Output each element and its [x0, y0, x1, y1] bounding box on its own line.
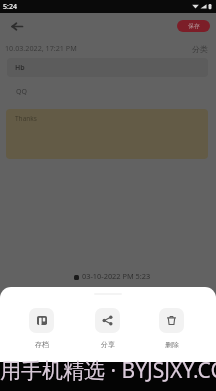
staticText: 03-10-2022 PM 5:23: [82, 271, 151, 281]
staticText: 存档: [35, 340, 49, 349]
button[interactable]: 分类: [189, 41, 211, 57]
staticText: 保存: [188, 22, 200, 30]
staticText: 删除: [165, 340, 179, 349]
staticText: QQ: [16, 87, 27, 97]
staticText: 5:24: [3, 2, 17, 12]
button[interactable]: 分享: [95, 308, 120, 349]
button[interactable]: 存档: [29, 308, 54, 349]
button[interactable]: Back: [5, 14, 29, 38]
staticText: Thanks: [15, 114, 37, 123]
button[interactable]: 删除: [159, 308, 184, 349]
staticText: 分类: [192, 44, 208, 54]
staticText: 分享: [101, 340, 115, 349]
staticText: 用手机精选 · BYJSJXY.CC: [0, 356, 216, 385]
staticText: Hb: [15, 63, 25, 73]
button[interactable]: 保存: [177, 20, 210, 32]
staticText: 10.03.2022, 17:21 PM: [5, 43, 77, 53]
